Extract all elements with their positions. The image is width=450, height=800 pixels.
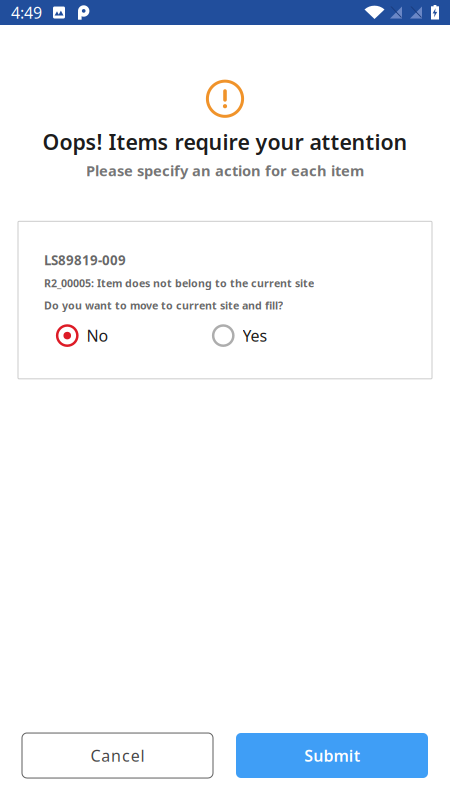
staticText: Do you want to move to current site and … xyxy=(44,298,283,312)
staticText: Please specify an action for each item xyxy=(86,161,364,180)
staticText: 4:49 xyxy=(11,2,42,23)
staticText: Cancel xyxy=(90,745,144,766)
staticText: Yes xyxy=(242,325,267,346)
button[interactable]: Cancel xyxy=(22,733,213,778)
staticText: Oops! Items require your attention xyxy=(42,127,407,156)
staticText: LS89819-009 xyxy=(44,251,126,269)
staticText: No xyxy=(86,325,108,346)
button[interactable]: Yes xyxy=(212,324,267,347)
staticText: Submit xyxy=(304,745,360,766)
staticText: R2_00005: Item does not belong to the cu… xyxy=(44,276,314,290)
button[interactable]: No xyxy=(56,324,108,347)
button[interactable]: Submit xyxy=(236,733,428,778)
